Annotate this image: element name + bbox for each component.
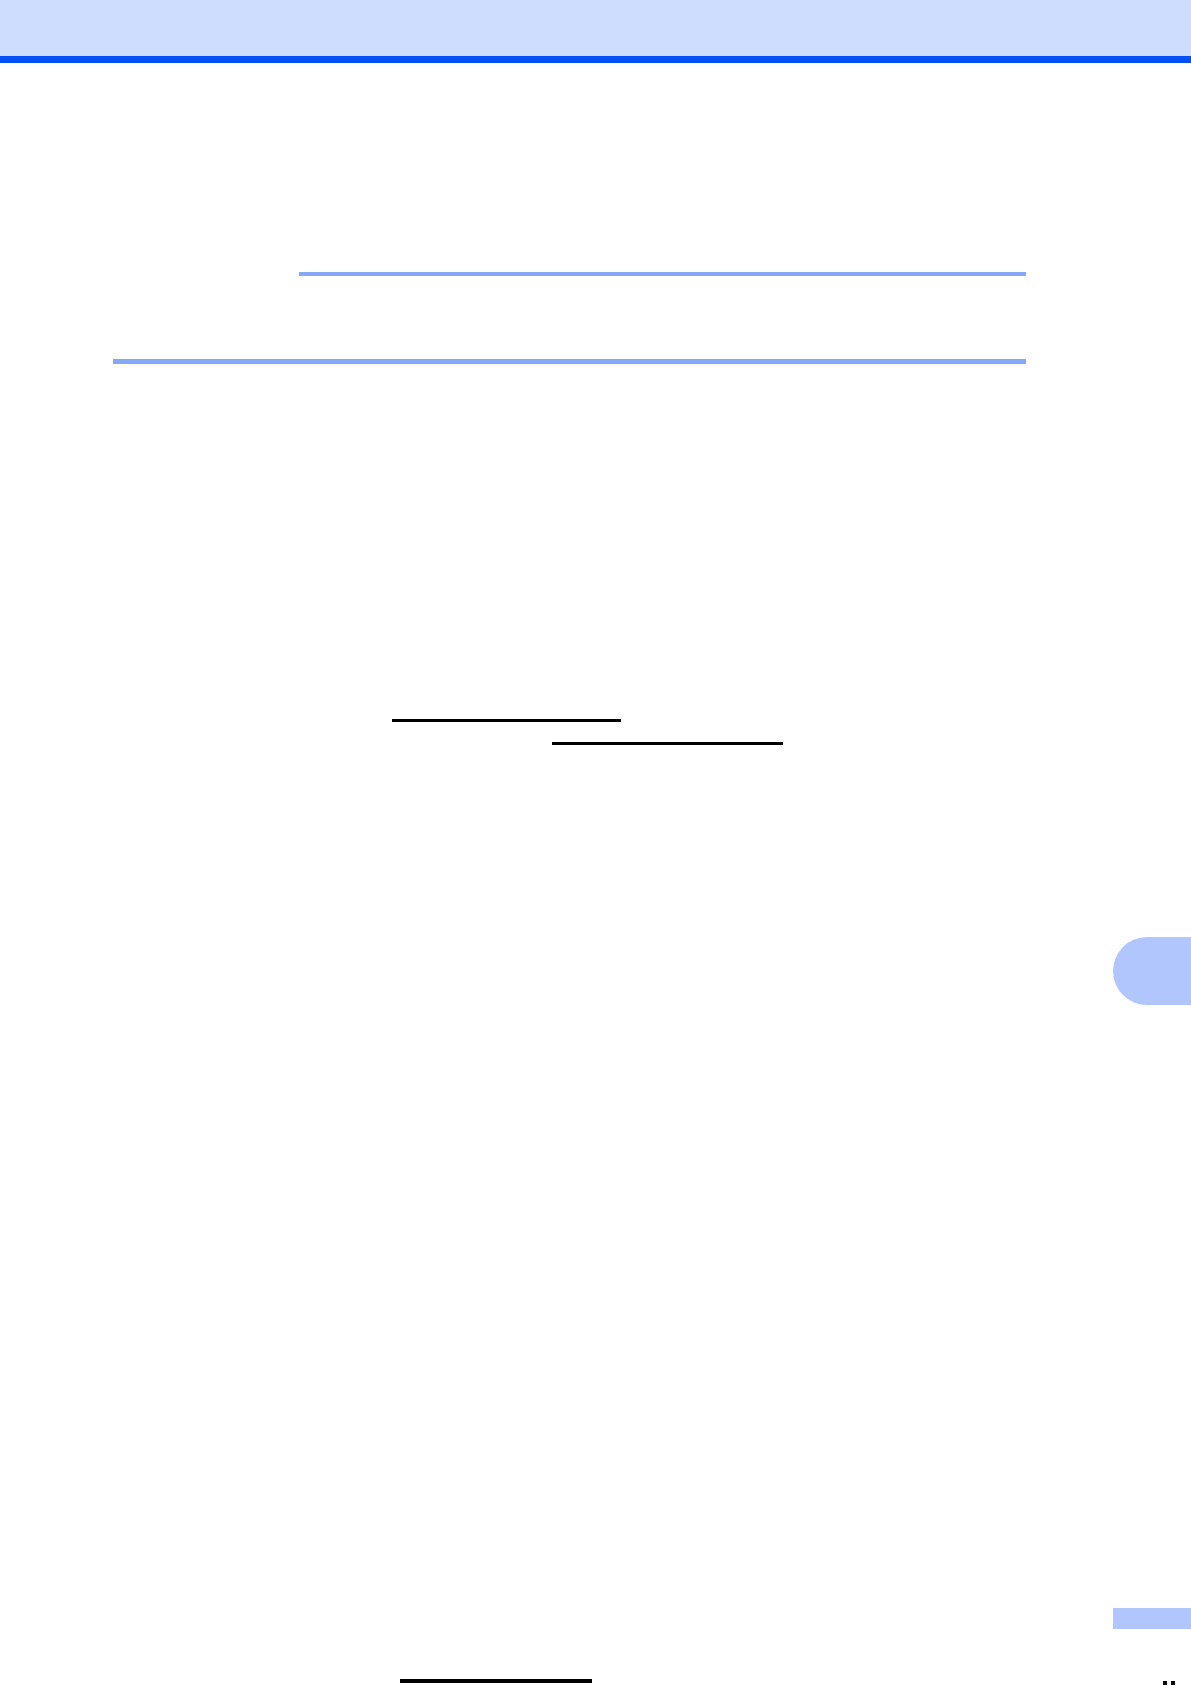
button[interactable]: Chapter tab bbox=[1113, 937, 1191, 1005]
